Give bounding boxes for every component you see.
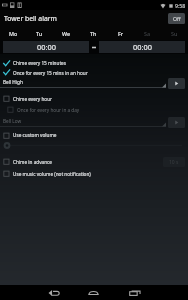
- staticText: Bell High: [3, 79, 23, 85]
- button[interactable]: Bell Low: [0, 116, 166, 130]
- button[interactable]: Volume: [0, 140, 188, 151]
- staticText: 10 s: [169, 159, 179, 166]
- button[interactable]: Tu: [26, 26, 53, 40]
- staticText: We: [62, 30, 71, 37]
- staticText: Bell Low: [3, 118, 22, 124]
- button[interactable]: Once for every hour in a day: [0, 104, 188, 115]
- button[interactable]: Play bell high: [168, 78, 185, 89]
- staticText: Chime every 15 minutes: [13, 60, 66, 66]
- staticText: 00:00: [37, 42, 56, 52]
- button[interactable]: Su: [161, 26, 188, 40]
- button[interactable]: Sa: [134, 26, 161, 40]
- staticText: 9:58: [175, 2, 186, 9]
- button[interactable]: Th: [80, 26, 107, 40]
- button[interactable]: Bell High: [0, 77, 166, 91]
- staticText: Th: [90, 30, 97, 37]
- button[interactable]: We: [53, 26, 80, 40]
- button[interactable]: Fr: [107, 26, 134, 40]
- button[interactable]: Once for every 15 mins in an hour: [0, 68, 188, 77]
- button[interactable]: Chime every 15 minutes: [0, 58, 188, 68]
- button[interactable]: Chime every hour: [0, 93, 188, 104]
- staticText: Tu: [36, 30, 43, 37]
- button[interactable]: Back: [41, 285, 66, 300]
- staticText: 00:00: [133, 42, 152, 52]
- button[interactable]: 00:00: [3, 41, 89, 53]
- staticText: Fr: [118, 30, 124, 37]
- button[interactable]: Home: [81, 285, 106, 300]
- staticText: Off: [173, 15, 181, 22]
- staticText: Chime in advance: [13, 159, 52, 165]
- staticText: Use custom volume: [13, 132, 57, 138]
- button[interactable]: Mo: [0, 26, 26, 40]
- staticText: Once for every 15 mins in an hour: [13, 70, 88, 76]
- button[interactable]: Chime in advance: [0, 155, 188, 168]
- button[interactable]: 10 s: [163, 157, 185, 167]
- button[interactable]: Use custom volume: [0, 130, 188, 140]
- button[interactable]: 00:00: [99, 41, 185, 53]
- button[interactable]: Play bell low: [168, 117, 185, 128]
- button[interactable]: Use music volume (not notification): [0, 168, 188, 179]
- staticText: Once for every hour in a day: [17, 107, 80, 113]
- staticText: Use music volume (not notification): [13, 171, 91, 177]
- button[interactable]: Recent apps: [122, 285, 147, 300]
- staticText: Tower bell alarm: [4, 14, 57, 23]
- staticText: Su: [171, 30, 178, 37]
- staticText: Sa: [144, 30, 151, 37]
- staticText: Mo: [9, 30, 18, 37]
- button[interactable]: Off: [168, 13, 185, 24]
- staticText: Chime every hour: [13, 96, 53, 102]
